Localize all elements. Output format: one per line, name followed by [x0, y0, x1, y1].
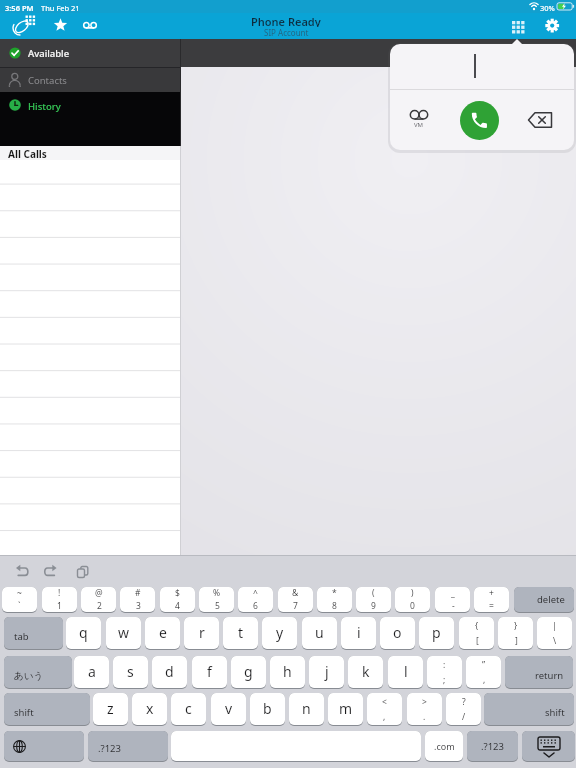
button[interactable]: >: [407, 693, 442, 725]
staticText: f: [207, 662, 212, 681]
button[interactable]: .?123: [88, 731, 168, 761]
button[interactable]: _: [435, 587, 470, 612]
button[interactable]: &: [278, 587, 313, 612]
button[interactable]: s: [113, 656, 148, 688]
button[interactable]: History: [0, 92, 180, 146]
button[interactable]: t: [223, 617, 258, 649]
button[interactable]: ): [395, 587, 430, 612]
button[interactable]: :: [427, 656, 462, 688]
button[interactable]: Contacts: [0, 68, 180, 92]
button[interactable]: p: [419, 617, 454, 649]
button[interactable]: @: [81, 587, 116, 612]
staticText: @: [95, 587, 103, 599]
button[interactable]: [522, 731, 575, 761]
staticText: e: [159, 623, 167, 642]
button[interactable]: #: [120, 587, 155, 612]
button[interactable]: shift: [484, 693, 574, 725]
button[interactable]: f: [192, 656, 227, 688]
button[interactable]: +: [474, 587, 509, 612]
button[interactable]: return: [505, 656, 573, 688]
staticText: `: [18, 600, 21, 612]
button[interactable]: z: [93, 693, 128, 725]
button[interactable]: {: [459, 617, 494, 649]
staticText: g: [244, 662, 253, 681]
staticText: -: [452, 600, 455, 612]
button[interactable]: [522, 106, 558, 134]
button[interactable]: [4, 731, 84, 761]
button[interactable]: ^: [238, 587, 273, 612]
button[interactable]: l: [388, 656, 423, 688]
button[interactable]: ~: [2, 587, 37, 612]
staticText: .?123: [98, 742, 121, 755]
staticText: <: [382, 696, 387, 708]
button[interactable]: ”: [466, 656, 501, 688]
button[interactable]: VM: [402, 103, 436, 131]
button[interactable]: Available: [0, 39, 180, 67]
staticText: t: [238, 623, 244, 642]
button[interactable]: tab: [4, 617, 63, 649]
button[interactable]: [171, 731, 421, 761]
button[interactable]: u: [302, 617, 337, 649]
staticText: q: [79, 623, 88, 642]
button[interactable]: r: [184, 617, 219, 649]
button[interactable]: h: [270, 656, 305, 688]
button[interactable]: q: [66, 617, 101, 649]
staticText: 8: [332, 600, 337, 612]
staticText: l: [404, 662, 408, 681]
staticText: [: [476, 635, 479, 647]
button[interactable]: y: [262, 617, 297, 649]
button[interactable]: a: [74, 656, 109, 688]
button[interactable]: [460, 101, 499, 140]
staticText: あいう: [14, 670, 44, 682]
button[interactable]: k: [348, 656, 383, 688]
button[interactable]: !: [42, 587, 77, 612]
button[interactable]: }: [498, 617, 533, 649]
button[interactable]: |: [537, 617, 572, 649]
button[interactable]: %: [199, 587, 234, 612]
button[interactable]: g: [231, 656, 266, 688]
button[interactable]: ?: [446, 693, 481, 725]
staticText: z: [107, 699, 114, 718]
button[interactable]: [52, 17, 69, 34]
staticText: >: [422, 696, 427, 708]
button[interactable]: .?123: [467, 731, 518, 761]
button[interactable]: shift: [4, 693, 90, 725]
button[interactable]: e: [145, 617, 180, 649]
button[interactable]: i: [341, 617, 376, 649]
button[interactable]: [12, 13, 38, 39]
button[interactable]: [543, 16, 562, 35]
staticText: w: [118, 623, 130, 642]
button[interactable]: delete: [514, 587, 574, 612]
button[interactable]: j: [309, 656, 344, 688]
button[interactable]: あいう: [4, 656, 72, 688]
button[interactable]: o: [380, 617, 415, 649]
button[interactable]: [80, 17, 100, 33]
staticText: 2: [97, 600, 102, 612]
button[interactable]: d: [152, 656, 187, 688]
staticText: &: [292, 587, 299, 599]
button[interactable]: *: [317, 587, 352, 612]
button[interactable]: x: [132, 693, 167, 725]
staticText: ): [411, 587, 414, 599]
staticText: s: [127, 662, 134, 681]
button[interactable]: c: [171, 693, 206, 725]
button[interactable]: .com: [425, 731, 463, 761]
button[interactable]: v: [211, 693, 246, 725]
button[interactable]: b: [250, 693, 285, 725]
button[interactable]: $: [160, 587, 195, 612]
staticText: ”: [482, 659, 486, 671]
button[interactable]: n: [289, 693, 324, 725]
button[interactable]: [508, 16, 528, 36]
staticText: shift: [14, 706, 34, 719]
button[interactable]: <: [367, 693, 402, 725]
staticText: ]: [515, 635, 518, 647]
staticText: i: [357, 623, 361, 642]
staticText: %: [213, 587, 221, 599]
staticText: 9: [371, 600, 376, 612]
staticText: *: [332, 587, 337, 599]
button[interactable]: (: [356, 587, 391, 612]
button[interactable]: m: [328, 693, 363, 725]
staticText: ,: [483, 674, 486, 686]
staticText: /: [462, 711, 466, 723]
button[interactable]: w: [106, 617, 141, 649]
